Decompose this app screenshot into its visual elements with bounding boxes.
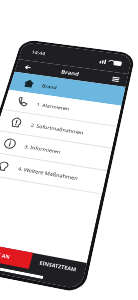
button[interactable]: 2. Sofortmaßnahmen [0,110,117,148]
staticText: 3. Informieren [24,143,62,155]
button[interactable]: Home [20,77,37,90]
button[interactable]: 1. Alarmieren [3,90,121,126]
staticText: 4. Weitere Maßnahmen [17,165,79,181]
button[interactable]: EINSATZTEAM [29,253,87,279]
button[interactable]: 4. Weitere Maßnahmen [0,152,107,194]
staticText: EINSATZTEAM [38,259,77,274]
staticText: 2. Sofortmaßnahmen [30,122,85,136]
staticText: Brand [60,68,80,77]
button[interactable]: Menu [107,72,124,86]
staticText: 14:44 [31,49,47,57]
button[interactable]: Back [19,61,36,73]
staticText: Brand [41,83,58,90]
button[interactable]: NOTRUF AN [0,239,33,269]
button[interactable]: 3. Informieren [0,131,112,170]
staticText: 1. Alarmieren [36,101,70,111]
staticText: NOTRUF AN [0,248,11,261]
